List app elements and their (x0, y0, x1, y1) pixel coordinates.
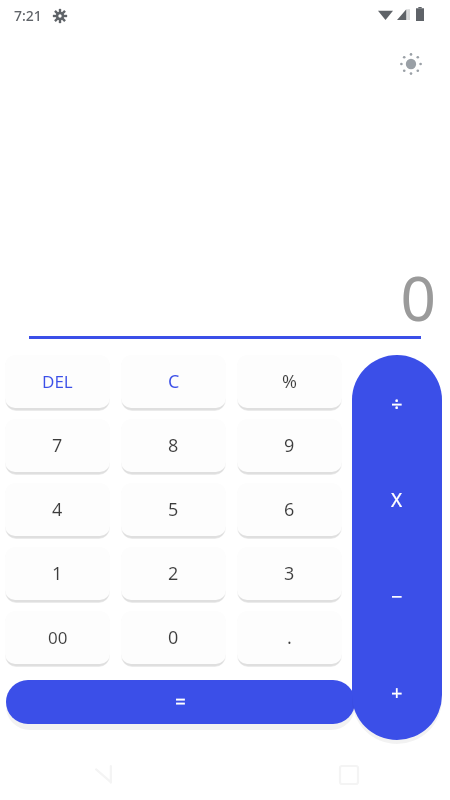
staticText: − (391, 583, 403, 610)
button[interactable]: 3 (237, 547, 342, 600)
button[interactable]: Subtract (352, 548, 442, 644)
button[interactable]: 7 (5, 419, 110, 472)
staticText: 7 (52, 433, 63, 458)
staticText: 3 (284, 561, 295, 586)
button[interactable]: 4 (5, 483, 110, 536)
staticText: 00 (48, 626, 68, 649)
staticText: 6 (284, 497, 295, 522)
staticText: 0 (0, 255, 436, 330)
staticText: 1 (52, 561, 63, 586)
button[interactable]: . (237, 611, 342, 664)
button[interactable]: 6 (237, 483, 342, 536)
button[interactable]: 1 (5, 547, 110, 600)
button[interactable]: Recent apps (340, 766, 358, 784)
button[interactable]: 0 (121, 611, 226, 664)
staticText: C (168, 369, 180, 394)
button[interactable]: 5 (121, 483, 226, 536)
button[interactable]: Toggle theme brightness (390, 43, 432, 85)
staticText: . (287, 625, 292, 650)
staticText: 2 (168, 561, 179, 586)
button[interactable]: C (121, 355, 226, 408)
staticText: DEL (42, 370, 73, 393)
button[interactable]: Back (95, 765, 117, 787)
button[interactable]: 2 (121, 547, 226, 600)
staticText: 0 (168, 625, 179, 650)
button[interactable]: 9 (237, 419, 342, 472)
staticText: + (391, 679, 403, 706)
button[interactable]: Divide (352, 355, 442, 452)
button[interactable]: 8 (121, 419, 226, 472)
button[interactable]: Multiply (352, 452, 442, 548)
button[interactable]: % (237, 355, 342, 408)
staticText: ÷ (391, 390, 403, 417)
staticText: 7:21 (14, 6, 42, 25)
button[interactable]: Add (352, 644, 442, 740)
staticText: X (391, 487, 403, 513)
staticText: 8 (168, 433, 179, 458)
staticText: 5 (168, 497, 179, 522)
staticText: % (282, 369, 297, 394)
staticText: 4 (52, 497, 63, 522)
staticText: 9 (284, 433, 295, 458)
staticText: = (175, 689, 186, 715)
button[interactable]: = (6, 680, 355, 724)
button[interactable]: 00 (5, 611, 110, 664)
button[interactable]: DEL (5, 355, 110, 408)
